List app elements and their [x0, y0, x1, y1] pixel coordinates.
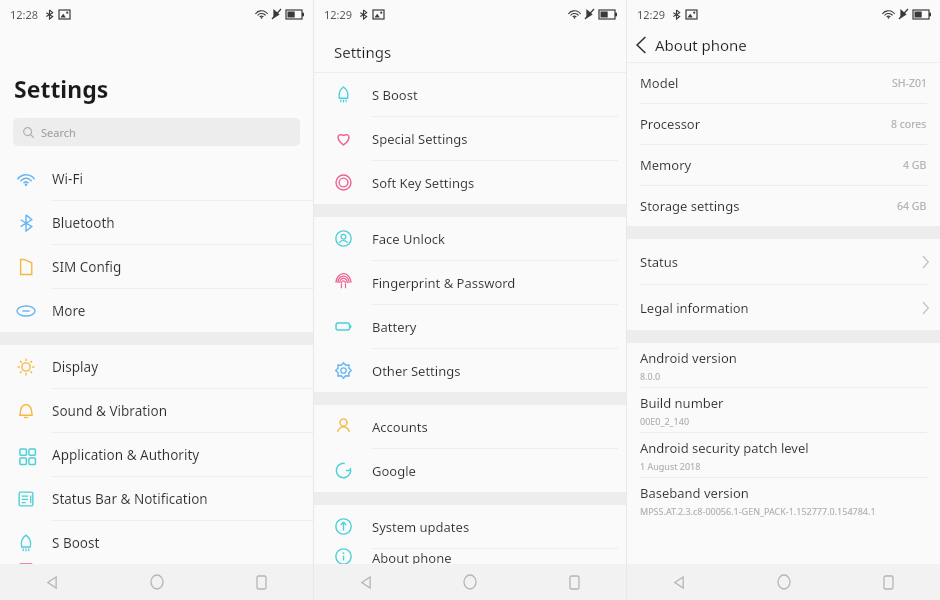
staticText: About phone [655, 35, 747, 55]
button[interactable]: Soft Key Settings [314, 161, 626, 204]
button[interactable]: Search [13, 118, 300, 146]
staticText: Status Bar & Notification [52, 490, 208, 508]
button[interactable]: Face Unlock [314, 217, 626, 260]
staticText: 12:28 [10, 7, 39, 22]
button[interactable]: Android version [640, 343, 930, 387]
staticText: 00E0_2_140 [640, 415, 690, 427]
staticText: Other Settings [372, 362, 461, 380]
button[interactable]: Baseband version [640, 478, 930, 522]
staticText: Baseband version [640, 484, 749, 502]
button[interactable]: Home [105, 564, 209, 600]
button[interactable]: Wi-Fi [0, 157, 313, 200]
button[interactable]: Legal information [640, 285, 929, 330]
button[interactable]: Recent apps [836, 564, 940, 600]
staticText: 1 August 2018 [640, 460, 701, 472]
staticText: About phone [372, 549, 452, 564]
button[interactable]: Home [418, 564, 522, 600]
button[interactable]: Home [732, 564, 836, 600]
staticText: S Boost [372, 86, 418, 104]
button[interactable]: Special Settings [314, 117, 626, 160]
staticText: System updates [372, 518, 470, 536]
button[interactable]: Recent apps [522, 564, 626, 600]
staticText: SH-Z01 [892, 76, 927, 90]
button[interactable]: Recent apps [209, 564, 313, 600]
staticText: Google [372, 462, 416, 480]
staticText: Build number [640, 394, 724, 412]
staticText: Storage settings [640, 197, 740, 215]
button[interactable]: Model [640, 63, 927, 103]
button[interactable]: Accounts [314, 405, 626, 448]
staticText: Fingerprint & Password [372, 274, 516, 292]
button[interactable]: S Boost [0, 521, 313, 564]
button[interactable]: More [0, 289, 313, 332]
staticText: Soft Key Settings [372, 174, 475, 192]
staticText: Display [52, 358, 99, 376]
button[interactable]: Other Settings [314, 349, 626, 392]
button[interactable]: S Boost [314, 73, 626, 116]
staticText: Settings [14, 73, 109, 104]
button[interactable]: Android security patch level [640, 433, 930, 477]
button[interactable]: Status Bar & Notification [0, 477, 313, 520]
staticText: MPSS.AT.2.3.c8-00056.1-GEN_PACK-1.152777… [640, 505, 876, 517]
staticText: Android security patch level [640, 439, 809, 457]
staticText: Status [640, 253, 679, 271]
staticText: Processor [640, 115, 701, 133]
staticText: 8.0.0 [640, 370, 661, 382]
staticText: Special Settings [372, 130, 468, 148]
staticText: 12:29 [637, 7, 666, 22]
button[interactable]: Storage settings [640, 186, 927, 226]
staticText: 64 GB [897, 199, 927, 213]
button[interactable]: Back [627, 28, 655, 62]
button[interactable]: About phone [314, 549, 626, 564]
button[interactable]: Build number [640, 388, 930, 432]
button[interactable]: Bluetooth [0, 201, 313, 244]
staticText: Battery [372, 318, 417, 336]
staticText: Settings [334, 42, 392, 62]
button[interactable]: Battery [314, 305, 626, 348]
staticText: Legal information [640, 299, 749, 317]
staticText: Sound & Vibration [52, 402, 168, 420]
button[interactable]: Memory [640, 145, 927, 185]
button[interactable]: Google [314, 449, 626, 492]
staticText: More [52, 302, 86, 320]
button[interactable]: Fingerprint & Password [314, 261, 626, 304]
button[interactable]: Back [314, 564, 418, 600]
staticText: Wi-Fi [52, 170, 83, 188]
button[interactable]: Application & Authority [0, 433, 313, 476]
staticText: Memory [640, 156, 692, 174]
staticText: Accounts [372, 418, 428, 436]
staticText: Bluetooth [52, 214, 115, 232]
button[interactable]: Back [627, 564, 732, 600]
staticText: Face Unlock [372, 230, 445, 248]
button[interactable]: System updates [314, 505, 626, 548]
staticText: Android version [640, 349, 737, 367]
staticText: SIM Config [52, 258, 122, 276]
button[interactable]: Display [0, 345, 313, 388]
button[interactable]: Processor [640, 104, 927, 144]
button[interactable]: Sound & Vibration [0, 389, 313, 432]
button[interactable]: Status [640, 239, 929, 284]
staticText: Model [640, 74, 679, 92]
button[interactable]: Back [0, 564, 105, 600]
staticText: Search [41, 125, 76, 140]
staticText: 12:29 [324, 7, 353, 22]
staticText: 4 GB [903, 158, 927, 172]
staticText: S Boost [52, 534, 100, 552]
button[interactable]: SIM Config [0, 245, 313, 288]
staticText: 8 cores [891, 117, 927, 131]
staticText: Application & Authority [52, 446, 200, 464]
